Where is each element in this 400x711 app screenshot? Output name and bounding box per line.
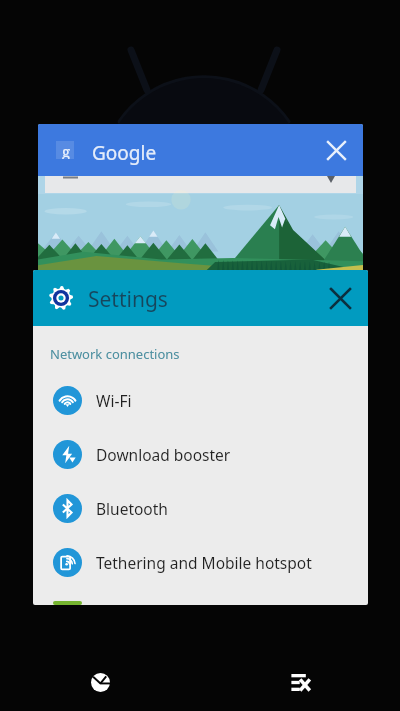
staticText: Google xyxy=(92,140,157,166)
button[interactable]: Multi window xyxy=(77,659,124,706)
button[interactable]: Close Google xyxy=(320,134,353,167)
staticText: Download booster xyxy=(96,444,231,465)
staticText: Bluetooth xyxy=(96,498,168,519)
button[interactable]: Tethering and Mobile hotspot xyxy=(33,535,368,589)
button[interactable]: Download booster xyxy=(33,427,368,481)
staticText: Tethering and Mobile hotspot xyxy=(96,552,312,573)
button[interactable]: Settings xyxy=(33,270,368,326)
button[interactable]: NFC xyxy=(33,589,368,605)
button[interactable]: g xyxy=(38,124,363,276)
staticText: Settings xyxy=(88,285,168,314)
button[interactable]: Bluetooth xyxy=(33,481,368,535)
button[interactable]: Close Settings xyxy=(321,279,359,317)
staticText: Network connections xyxy=(50,345,180,363)
button[interactable]: Close all xyxy=(277,659,324,706)
button[interactable]: Wi-Fi xyxy=(33,373,368,427)
staticText: Wi-Fi xyxy=(96,390,132,411)
staticText: g xyxy=(62,141,71,159)
